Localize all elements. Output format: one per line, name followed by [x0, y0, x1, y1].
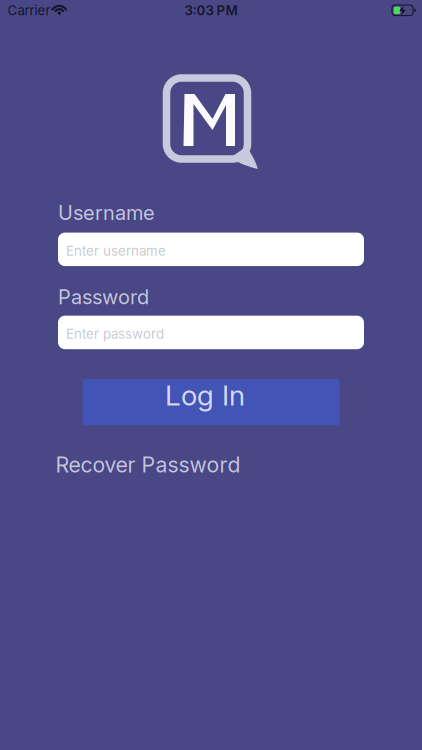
staticText: 3:03 PM [184, 2, 237, 18]
button[interactable]: Recover Password [55, 452, 240, 477]
staticText: Username [58, 201, 155, 225]
staticText: Password [58, 285, 149, 309]
textField[interactable]: Enter username [58, 233, 364, 266]
staticText: Log In [165, 379, 245, 412]
staticText: Recover Password [55, 452, 240, 477]
staticText: Enter password [66, 326, 164, 342]
textField[interactable]: Enter password [58, 316, 364, 349]
staticText: Carrier [7, 2, 50, 18]
button[interactable]: Log In [82, 379, 339, 425]
staticText: Enter username [66, 243, 166, 259]
